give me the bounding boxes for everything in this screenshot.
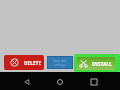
button[interactable]: Back xyxy=(20,75,33,88)
button[interactable]: Home xyxy=(53,75,66,88)
staticText: INSTALL xyxy=(92,61,113,67)
button[interactable]: Recent apps xyxy=(87,75,100,88)
staticText: keep data settings xyxy=(53,59,67,67)
button[interactable]: INSTALL xyxy=(74,54,120,72)
button[interactable]: keep data settings xyxy=(47,56,73,69)
staticText: DELETE xyxy=(24,60,42,66)
button[interactable]: DELETE xyxy=(4,55,44,70)
